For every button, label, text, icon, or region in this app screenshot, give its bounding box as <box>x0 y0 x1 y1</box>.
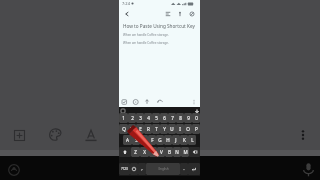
staticText: J <box>175 137 177 143</box>
button[interactable]: G <box>156 135 164 145</box>
staticText: I <box>179 126 181 132</box>
button[interactable]: Reminder <box>187 9 196 18</box>
button[interactable]: Undo <box>156 98 164 106</box>
button[interactable]: Backspace <box>189 147 200 157</box>
button[interactable]: K <box>180 135 188 145</box>
button[interactable]: I <box>176 124 184 134</box>
button[interactable]: Attach <box>143 98 151 106</box>
staticText: English <box>158 167 169 171</box>
staticText: T <box>155 126 158 132</box>
button[interactable]: 9 <box>184 113 192 123</box>
button[interactable]: Image <box>132 98 140 106</box>
staticText: C <box>152 149 155 155</box>
staticText: D <box>142 137 146 143</box>
button[interactable]: V <box>157 147 165 157</box>
button[interactable]: W <box>128 124 136 134</box>
staticText: Z <box>134 149 137 155</box>
button[interactable]: Clipboard <box>120 108 125 113</box>
button[interactable]: A <box>123 135 132 145</box>
staticText: H <box>166 137 170 143</box>
staticText: How to Paste Using Shortcut Key <box>123 23 195 29</box>
button[interactable]: E <box>136 124 144 134</box>
button[interactable]: Microphone <box>298 159 318 179</box>
button[interactable]: Emoji <box>130 163 138 175</box>
staticText: E <box>139 126 142 132</box>
button[interactable]: Voice input <box>194 108 199 113</box>
staticText: ?123 <box>121 167 128 171</box>
staticText: K <box>183 137 186 143</box>
button[interactable]: Period <box>180 163 188 175</box>
button[interactable]: Settings <box>4 160 23 179</box>
button[interactable]: Y <box>160 124 168 134</box>
button[interactable]: N <box>173 147 181 157</box>
button[interactable]: F <box>148 135 156 145</box>
button[interactable]: 3 <box>136 113 144 123</box>
button[interactable]: H <box>164 135 172 145</box>
button[interactable]: 8 <box>176 113 184 123</box>
staticText: U <box>170 126 174 132</box>
staticText: 6 <box>163 115 166 121</box>
staticText: L <box>191 137 194 143</box>
button[interactable]: 4 <box>144 113 152 123</box>
staticText: G <box>158 137 162 143</box>
staticText: A <box>126 137 129 143</box>
button[interactable]: D <box>140 135 148 145</box>
button[interactable]: Color palette <box>44 123 66 145</box>
button[interactable]: R <box>144 124 152 134</box>
button[interactable]: 1 <box>119 113 128 123</box>
button[interactable]: Checklist <box>163 9 172 18</box>
button[interactable]: More <box>190 98 198 106</box>
button[interactable]: 7 <box>168 113 176 123</box>
button[interactable]: L <box>188 135 196 145</box>
staticText: Q <box>122 126 126 132</box>
staticText: S <box>135 137 138 143</box>
button[interactable]: J <box>172 135 180 145</box>
button[interactable]: Text <box>80 124 102 146</box>
staticText: 1 <box>122 115 125 121</box>
staticText: 8 <box>179 115 182 121</box>
button[interactable]: T <box>152 124 160 134</box>
staticText: When we handle Coffee storage. <box>123 41 169 45</box>
button[interactable]: P <box>192 124 200 134</box>
button[interactable]: M <box>181 147 189 157</box>
button[interactable]: Z <box>131 147 140 157</box>
staticText: 0 <box>195 115 198 121</box>
staticText: 7 <box>171 115 174 121</box>
button[interactable]: More options <box>294 126 312 144</box>
staticText: Y <box>163 126 166 132</box>
button[interactable]: Enter <box>188 163 200 175</box>
staticText: 5 <box>155 115 158 121</box>
button[interactable]: O <box>184 124 192 134</box>
staticText: 7:24 <box>122 1 130 6</box>
staticText: 3 <box>139 115 142 121</box>
staticText: O <box>186 126 190 132</box>
staticText: 4 <box>147 115 150 121</box>
button[interactable]: Q <box>119 124 128 134</box>
button[interactable]: S <box>132 135 140 145</box>
staticText: R <box>147 126 150 132</box>
button[interactable]: 5 <box>152 113 160 123</box>
staticText: N <box>175 149 179 155</box>
button[interactable]: C <box>149 147 157 157</box>
button[interactable]: X <box>140 147 149 157</box>
button[interactable]: 2 <box>128 113 136 123</box>
button[interactable]: ?123 <box>119 163 130 175</box>
button[interactable]: B <box>165 147 173 157</box>
staticText: V <box>160 149 163 155</box>
staticText: 9 <box>187 115 190 121</box>
staticText: W <box>130 126 135 132</box>
button[interactable]: Comma <box>138 163 146 175</box>
button[interactable]: 6 <box>160 113 168 123</box>
button[interactable]: Back <box>122 9 131 18</box>
button[interactable]: Space <box>146 163 180 175</box>
staticText: F <box>151 137 154 143</box>
button[interactable]: U <box>168 124 176 134</box>
staticText: B <box>168 149 171 155</box>
staticText: When we handle Coffee storage. <box>123 33 169 37</box>
button[interactable]: 0 <box>192 113 200 123</box>
staticText: P <box>195 126 198 132</box>
button[interactable]: Add element <box>8 124 30 146</box>
button[interactable]: Checklist <box>121 98 129 106</box>
button[interactable]: Shift <box>119 147 131 157</box>
button[interactable]: Pin <box>175 9 184 18</box>
